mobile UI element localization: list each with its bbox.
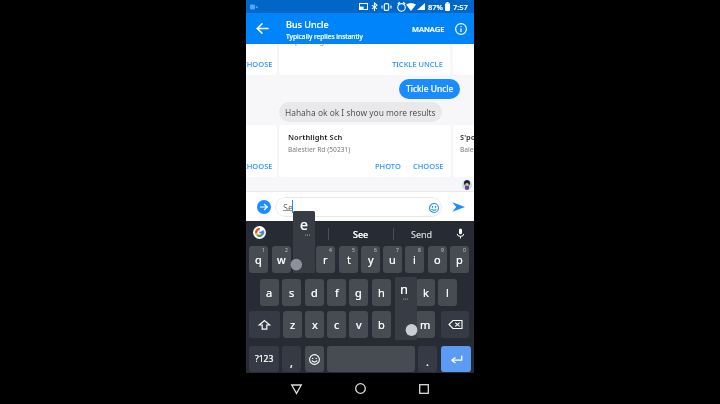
button[interactable]: See (329, 221, 392, 246)
button[interactable]: Emoji keyboard (305, 346, 324, 372)
staticText: p (456, 252, 463, 267)
staticText: 7 (396, 247, 399, 254)
button[interactable]: Back (248, 13, 276, 44)
staticText: CHOOSE (413, 161, 444, 171)
button[interactable]: Home (344, 373, 376, 404)
button[interactable]: Recent apps (408, 373, 440, 404)
staticText: u (389, 252, 396, 267)
button[interactable]: Google search (253, 226, 266, 239)
staticText: 0 (463, 247, 466, 254)
button[interactable]: x (305, 311, 324, 338)
staticText: PHOTO (375, 161, 401, 171)
button[interactable]: v (349, 311, 368, 338)
button[interactable]: z (283, 311, 302, 338)
staticText: h (378, 285, 385, 300)
button[interactable]: p (450, 246, 469, 273)
staticText: MANAGE (412, 24, 445, 34)
button[interactable]: l (438, 279, 457, 306)
button[interactable]: Tickle Uncle (399, 79, 460, 99)
staticText: Hahaha ok ok I show you more results (285, 107, 436, 118)
staticText: c (334, 317, 340, 332)
button[interactable]: i (405, 246, 424, 273)
button[interactable]: Send (448, 199, 468, 215)
staticText: 6 (374, 247, 377, 254)
staticText: s (289, 285, 295, 300)
staticText: t (347, 252, 351, 267)
staticText: See (353, 228, 369, 240)
button[interactable]: u (383, 246, 402, 273)
button[interactable]: g (349, 279, 368, 306)
staticText: g (355, 285, 362, 300)
staticText: 87% (428, 2, 443, 12)
staticText: b (378, 317, 385, 332)
button[interactable]: Enter (441, 346, 471, 372)
button[interactable]: Northlight Sch (279, 125, 451, 177)
button[interactable]: Send (394, 221, 450, 246)
staticText: CHOOSE (246, 161, 273, 171)
button[interactable]: Emoji (428, 202, 439, 213)
button[interactable]: r (316, 246, 335, 273)
staticText: r (323, 252, 328, 267)
staticText: y (368, 252, 374, 267)
staticText: . (426, 354, 429, 369)
button[interactable]: w (272, 246, 291, 273)
staticText: z (290, 317, 296, 332)
button[interactable]: o (428, 246, 447, 273)
button[interactable]: t (339, 246, 358, 273)
button[interactable]: CHOOSE (246, 44, 277, 75)
staticText: l (446, 285, 449, 300)
button[interactable]: Shift (249, 311, 280, 338)
button[interactable]: h (372, 279, 391, 306)
button[interactable]: c (327, 311, 346, 338)
staticText: 4 (329, 247, 332, 254)
button[interactable]: q (249, 246, 268, 273)
staticText: Upcoming (290, 44, 324, 47)
button[interactable]: Hahaha ok ok I show you more results (279, 102, 442, 122)
button[interactable]: f (327, 279, 346, 306)
button[interactable]: S'pore (453, 125, 474, 177)
staticText: 8 (418, 247, 421, 254)
button[interactable]: m (416, 311, 435, 338)
button[interactable]: More options (257, 200, 271, 214)
staticText: TICKLE UNCLE (392, 59, 443, 69)
button[interactable]: s (282, 279, 301, 306)
button[interactable]: ?123 (249, 346, 279, 372)
staticText: q (255, 252, 262, 267)
staticText: 5 (352, 247, 355, 254)
button[interactable]: CHOOSE (246, 125, 277, 177)
button[interactable]: Conversation info (450, 13, 471, 44)
button[interactable]: Se (275, 197, 442, 217)
button[interactable]: Backspace (441, 311, 469, 338)
button[interactable]: MANAGE (406, 13, 450, 44)
button[interactable]: b (372, 311, 391, 338)
staticText: w (277, 252, 286, 267)
staticText: Bus Uncle (286, 18, 329, 30)
staticText: Send (411, 228, 433, 240)
button[interactable]: d (305, 279, 324, 306)
staticText: 7:57 (453, 2, 468, 12)
button[interactable]: k (416, 279, 435, 306)
button[interactable]: Back (280, 373, 312, 404)
button[interactable]: , (282, 346, 301, 372)
button[interactable]: . (418, 346, 437, 372)
staticText: a (266, 285, 273, 300)
staticText: i (413, 252, 416, 267)
staticText: f (335, 285, 339, 300)
button[interactable]: Voice input (450, 221, 470, 246)
staticText: m (420, 317, 431, 332)
staticText: Se (283, 201, 294, 213)
staticText: Northlight Sch (288, 132, 343, 142)
button[interactable]: y (361, 246, 380, 273)
staticText: CHOOSE (246, 59, 273, 69)
staticText: 2 (285, 247, 288, 254)
staticText: d (311, 285, 318, 300)
staticText: Typically replies instantly (286, 32, 363, 41)
staticText: Balestier Rd (50231) (288, 145, 351, 154)
staticText: Bales (460, 145, 474, 154)
staticText: 1 (262, 247, 265, 254)
staticText: ?123 (255, 353, 274, 365)
button[interactable]: a (260, 279, 279, 306)
button[interactable]: Upcoming (279, 44, 450, 75)
